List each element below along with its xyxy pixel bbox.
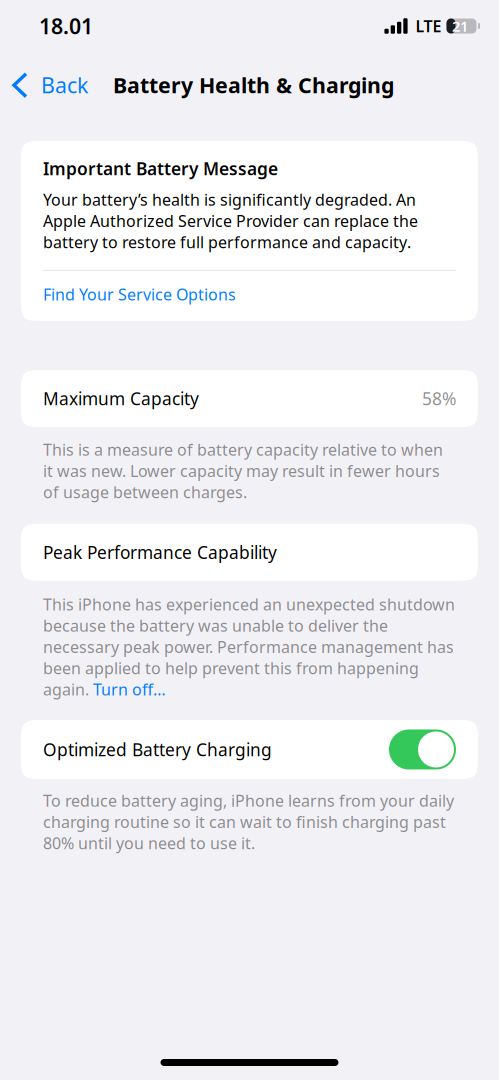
- staticText: Your battery’s health is significantly d…: [43, 189, 418, 253]
- button[interactable]: Find Your Service Options: [43, 271, 456, 318]
- staticText: Optimized Battery Charging: [43, 738, 272, 761]
- staticText: Peak Performance Capability: [43, 541, 277, 564]
- staticText: Back: [41, 71, 88, 99]
- button[interactable]: Maximum Capacity: [21, 370, 478, 427]
- staticText: This is a measure of battery capacity re…: [43, 439, 443, 503]
- staticText: Find Your Service Options: [43, 284, 236, 305]
- staticText: Important Battery Message: [43, 157, 278, 180]
- staticText: 21: [452, 16, 468, 36]
- staticText: Maximum Capacity: [43, 387, 199, 410]
- staticText: 58%: [422, 387, 456, 410]
- staticText: LTE: [415, 15, 441, 37]
- button[interactable]: Peak Performance Capability: [21, 524, 478, 581]
- staticText: To reduce battery aging, iPhone learns f…: [43, 790, 454, 854]
- staticText: This iPhone has experienced an unexpecte…: [43, 594, 455, 700]
- staticText: Battery Health & Charging: [113, 71, 394, 99]
- button[interactable]: Optimized Battery Charging: [389, 729, 456, 769]
- button[interactable]: Back: [0, 63, 96, 107]
- staticText: 18.01: [39, 12, 93, 40]
